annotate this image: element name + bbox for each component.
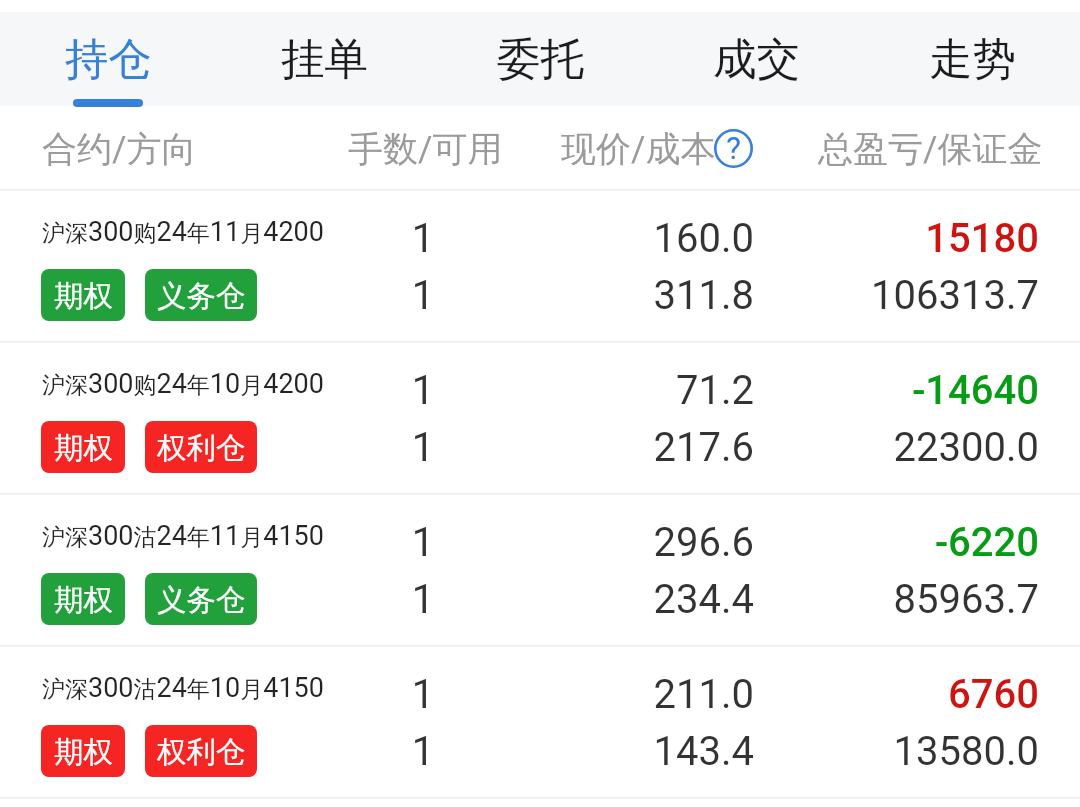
- staticText: -14640: [679, 367, 1039, 414]
- staticText: 持仓: [65, 32, 152, 87]
- staticText: 311.8: [454, 272, 754, 319]
- staticText: 委托: [497, 32, 584, 87]
- staticText: 期权: [54, 430, 113, 467]
- staticText: 6760: [679, 671, 1039, 718]
- button[interactable]: 沪深300购24年10月4200: [0, 343, 1080, 495]
- staticText: 160.0: [454, 215, 754, 262]
- staticText: 义务仓: [157, 278, 246, 315]
- staticText: 走势: [929, 32, 1016, 87]
- button[interactable]: 走势: [864, 12, 1080, 106]
- staticText: 1: [303, 728, 543, 775]
- staticText: 权利仓: [157, 734, 246, 771]
- staticText: 沪深300购24年11月4200: [42, 216, 324, 248]
- staticText: 1: [303, 215, 543, 262]
- staticText: 沪深300沽24年11月4150: [42, 520, 324, 552]
- staticText: -6220: [679, 519, 1039, 566]
- staticText: 15180: [679, 215, 1039, 262]
- staticText: 1: [303, 519, 543, 566]
- staticText: 1: [303, 272, 543, 319]
- staticText: 1: [303, 367, 543, 414]
- button[interactable]: 现价成本说明: [714, 129, 753, 168]
- staticText: 143.4: [454, 728, 754, 775]
- staticText: 217.6: [454, 424, 754, 471]
- staticText: 1: [303, 424, 543, 471]
- button[interactable]: 沪深300沽24年10月4150: [0, 647, 1080, 799]
- button[interactable]: 义务仓: [145, 269, 257, 321]
- button[interactable]: 期权: [41, 269, 125, 321]
- button[interactable]: 期权: [41, 573, 125, 625]
- button[interactable]: 成交: [648, 12, 864, 106]
- button[interactable]: 沪深300沽24年11月4150: [0, 495, 1080, 647]
- button[interactable]: 委托: [432, 12, 648, 106]
- staticText: 期权: [54, 734, 113, 771]
- staticText: 现价/成本: [561, 127, 716, 171]
- staticText: 71.2: [454, 367, 754, 414]
- staticText: 成交: [713, 32, 800, 87]
- staticText: 义务仓: [157, 582, 246, 619]
- staticText: 1: [303, 671, 543, 718]
- button[interactable]: 期权: [41, 725, 125, 777]
- staticText: 期权: [54, 582, 113, 619]
- staticText: ?: [726, 130, 741, 166]
- staticText: 22300.0: [679, 424, 1039, 471]
- staticText: 沪深300沽24年10月4150: [42, 672, 324, 704]
- staticText: 沪深300购24年10月4200: [42, 368, 324, 400]
- button[interactable]: 权利仓: [145, 725, 257, 777]
- staticText: 手数/可用: [348, 127, 503, 171]
- staticText: 期权: [54, 278, 113, 315]
- button[interactable]: 期权: [41, 421, 125, 473]
- staticText: 296.6: [454, 519, 754, 566]
- staticText: 总盈亏/保证金: [818, 127, 1043, 171]
- staticText: 挂单: [281, 32, 368, 87]
- button[interactable]: 义务仓: [145, 573, 257, 625]
- button[interactable]: 持仓: [0, 12, 216, 106]
- staticText: 权利仓: [157, 430, 246, 467]
- staticText: 106313.7: [679, 272, 1039, 319]
- button[interactable]: 挂单: [216, 12, 432, 106]
- staticText: 234.4: [454, 576, 754, 623]
- button[interactable]: 权利仓: [145, 421, 257, 473]
- staticText: 1: [303, 576, 543, 623]
- staticText: 211.0: [454, 671, 754, 718]
- staticText: 合约/方向: [42, 127, 197, 171]
- staticText: 85963.7: [679, 576, 1039, 623]
- button[interactable]: 沪深300购24年11月4200: [0, 191, 1080, 343]
- staticText: 13580.0: [679, 728, 1039, 775]
